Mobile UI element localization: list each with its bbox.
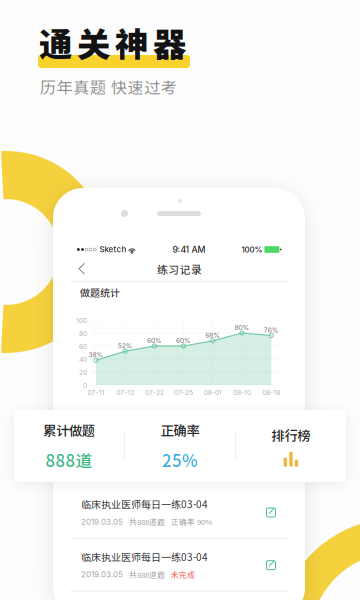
staticText: 08-10 [233,388,251,397]
staticText: 0 [83,382,87,390]
staticText: 888道 [46,448,93,472]
staticText: 通关神器 [39,18,186,66]
staticText: 07-12 [116,388,134,397]
staticText: 08-18 [262,388,280,397]
button[interactable]: Back [70,257,94,280]
staticText: 52% [118,342,133,350]
staticText: 2019.03.05 [81,517,123,527]
staticText: 100 [76,317,87,325]
staticText: 100% [241,245,262,254]
staticText: 正确率 90% [171,516,212,527]
staticText: 07-11 [87,388,104,397]
staticText: 76% [264,326,279,334]
staticText: 临床执业医师每日一练03-04 [81,549,208,564]
staticText: 累计做题 [43,420,95,440]
staticText: 9:41 AM [172,244,205,255]
staticText: 07-25 [174,388,193,397]
staticText: 68% [205,331,220,339]
staticText: 60% [147,336,162,345]
staticText: 80 [79,330,87,338]
button[interactable]: 临床执业医师每日一练03-04 [70,486,289,538]
staticText: Sketch [97,244,126,254]
staticText: 20 [79,369,87,377]
staticText: 07-22 [145,388,164,397]
staticText: 25% [162,448,198,472]
staticText: 40 [79,356,87,364]
staticText: 历年真题 快速过考 [40,75,177,98]
staticText: 38% [88,351,103,359]
staticText: 排行榜 [271,425,310,445]
staticText: 临床执业医师每日一练03-04 [81,497,208,511]
staticText: 60 [79,343,87,351]
staticText: 做题统计 [80,285,120,299]
staticText: 共888道题 [129,569,165,580]
staticText: 正确率 [160,420,199,440]
staticText: 60% [176,336,191,345]
staticText: 共888道题 [129,516,165,527]
staticText: 08-01 [204,388,222,397]
staticText: 80% [234,323,249,332]
staticText: 2019.03.05 [81,570,123,579]
staticText: 未完成 [171,569,195,580]
button[interactable]: 临床执业医师每日一练03-04 [70,539,289,591]
staticText: 练习记录 [157,261,202,277]
